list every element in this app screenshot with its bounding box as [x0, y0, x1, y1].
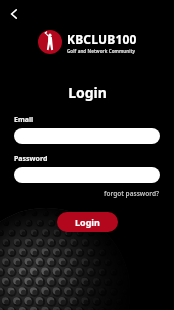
- staticText: Email: [14, 115, 34, 125]
- staticText: Password: [14, 154, 48, 164]
- button[interactable]: Login: [57, 212, 118, 232]
- button[interactable]: forgot password?: [104, 189, 160, 198]
- staticText: KBCLUB100: [67, 31, 137, 47]
- staticText: Login: [68, 83, 107, 102]
- staticText: forgot password?: [104, 189, 160, 198]
- staticText: Login: [75, 216, 100, 228]
- button[interactable]: Email input: [14, 128, 160, 144]
- staticText: Golf and Network Community: [67, 48, 136, 54]
- button[interactable]: Password input: [14, 167, 160, 183]
- button[interactable]: Back: [0, 0, 28, 28]
